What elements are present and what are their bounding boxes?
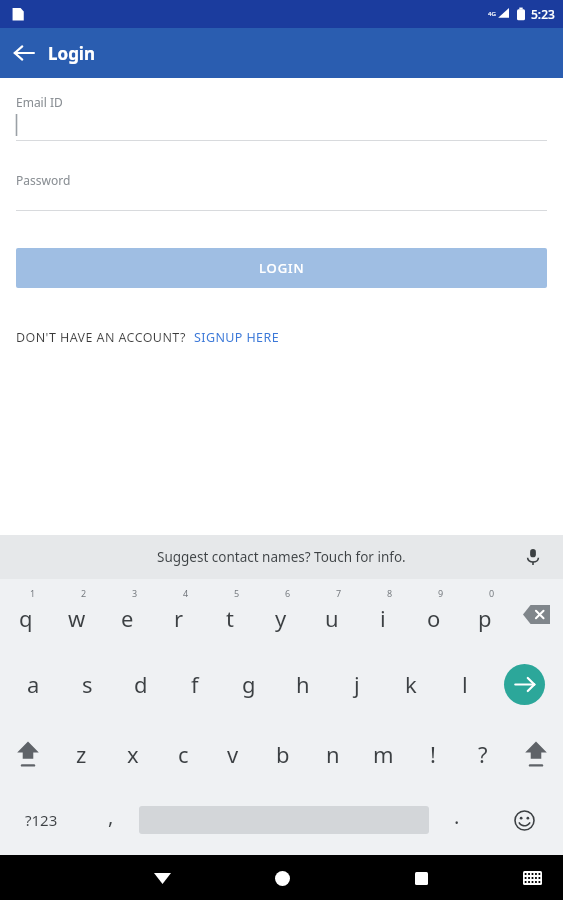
staticText: v (227, 739, 239, 769)
staticText: 8 (387, 587, 393, 599)
button[interactable]: 4 (153, 579, 204, 649)
staticText: 4G (488, 10, 496, 18)
staticText: o (427, 603, 441, 633)
staticText: d (134, 669, 148, 699)
button[interactable]: s (60, 649, 114, 719)
staticText: 5 (234, 587, 240, 599)
button[interactable]: . (429, 789, 485, 851)
staticText: g (242, 669, 256, 699)
button[interactable]: Voice input (519, 543, 547, 571)
button[interactable]: v (208, 719, 258, 789)
staticText: SIGNUP HERE (194, 329, 279, 346)
staticText: 4 (183, 587, 189, 599)
staticText: f (191, 669, 199, 699)
staticText: ? (478, 739, 488, 769)
button[interactable]: 7 (306, 579, 357, 649)
staticText: DON'T HAVE AN ACCOUNT? (16, 329, 186, 346)
button[interactable]: Emoji (485, 789, 563, 851)
button[interactable]: SIGNUP HERE (186, 329, 279, 346)
staticText: w (68, 603, 86, 633)
button[interactable]: 8 (357, 579, 408, 649)
button[interactable]: Home (262, 858, 302, 898)
staticText: p (478, 603, 492, 633)
button[interactable]: ! (408, 719, 458, 789)
button[interactable]: Shift (508, 719, 563, 789)
button[interactable]: h (276, 649, 330, 719)
button[interactable]: f (168, 649, 222, 719)
button[interactable]: c (158, 719, 208, 789)
staticText: l (462, 669, 468, 699)
staticText: e (121, 603, 134, 633)
button[interactable]: a (6, 649, 60, 719)
button[interactable]: Shift (0, 719, 56, 789)
staticText: j (354, 669, 360, 699)
staticText: LOGIN (259, 259, 305, 277)
button[interactable]: l (438, 649, 492, 719)
button[interactable]: 0 (459, 579, 510, 649)
button[interactable]: 9 (408, 579, 459, 649)
button[interactable]: x (107, 719, 158, 789)
button[interactable]: Switch keyboard (515, 861, 549, 895)
button[interactable]: Back (0, 29, 48, 77)
staticText: 7 (336, 587, 342, 599)
staticText: . (454, 803, 460, 830)
staticText: i (380, 603, 386, 633)
staticText: x (127, 739, 139, 769)
staticText: ?123 (25, 810, 58, 830)
staticText: y (275, 603, 287, 633)
staticText: Password (16, 172, 71, 188)
button[interactable]: Backspace (510, 579, 563, 649)
staticText: t (226, 603, 234, 633)
button[interactable]: g (222, 649, 276, 719)
button[interactable]: Enter (492, 649, 557, 719)
staticText: b (276, 739, 290, 769)
button[interactable]: k (384, 649, 438, 719)
staticText: s (82, 669, 93, 699)
staticText: ! (430, 739, 436, 769)
button[interactable]: ?123 (0, 789, 83, 851)
button[interactable]: z (56, 719, 107, 789)
button[interactable]: , (83, 789, 139, 851)
staticText: q (19, 603, 33, 633)
staticText: n (326, 739, 340, 769)
button[interactable]: LOGIN (16, 248, 547, 288)
staticText: , (108, 803, 114, 830)
button[interactable]: d (114, 649, 168, 719)
staticText: h (296, 669, 310, 699)
button[interactable]: 6 (255, 579, 306, 649)
staticText: 1 (30, 587, 36, 599)
staticText: Email ID (16, 94, 63, 110)
staticText: a (27, 669, 40, 699)
staticText: m (373, 739, 394, 769)
staticText: k (405, 669, 417, 699)
staticText: r (174, 603, 184, 633)
button[interactable]: Suggest contact names? Touch for info. (157, 548, 406, 566)
staticText: 3 (132, 587, 138, 599)
button[interactable]: 1 (0, 579, 51, 649)
button[interactable]: 3 (102, 579, 153, 649)
staticText: u (325, 603, 339, 633)
button[interactable]: Recents (401, 858, 441, 898)
button[interactable]: 2 (51, 579, 102, 649)
button[interactable]: n (308, 719, 358, 789)
button[interactable]: m (358, 719, 408, 789)
button[interactable]: 5 (204, 579, 255, 649)
staticText: z (76, 739, 87, 769)
button[interactable]: Hide keyboard (142, 858, 182, 898)
staticText: 5:23 (531, 6, 555, 22)
button[interactable]: ? (458, 719, 508, 789)
button[interactable]: j (330, 649, 384, 719)
staticText: 9 (438, 587, 444, 599)
staticText: 6 (285, 587, 291, 599)
staticText: 2 (81, 587, 87, 599)
staticText: Login (48, 42, 96, 65)
staticText: 0 (489, 587, 495, 599)
staticText: c (178, 739, 189, 769)
button[interactable]: b (258, 719, 308, 789)
